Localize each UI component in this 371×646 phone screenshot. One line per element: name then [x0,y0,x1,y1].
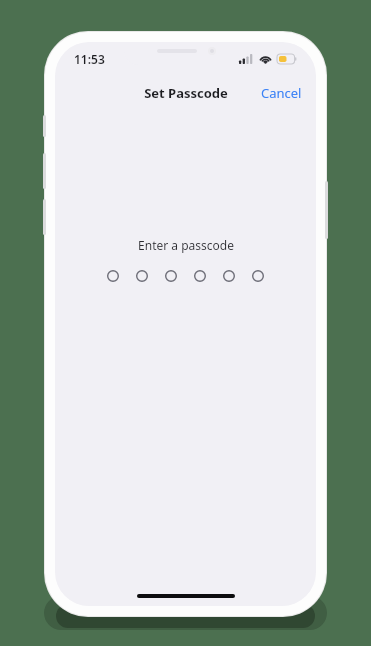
other: Passcode entry field [107,270,264,282]
staticText: 11:53 [74,51,105,67]
staticText: Set Passcode [144,84,228,102]
staticText: Enter a passcode [138,237,234,253]
button[interactable]: Cancel [247,79,316,107]
staticText: Cancel [261,84,302,102]
